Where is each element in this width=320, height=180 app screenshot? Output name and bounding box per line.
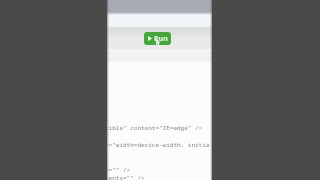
other: Mouse pointer	[155, 39, 161, 47]
staticText: tible" content="IE=edge" />	[107, 124, 203, 132]
staticText: tents="" />	[107, 174, 145, 180]
staticText: Run	[154, 34, 168, 44]
staticText: t="" />	[107, 166, 131, 174]
button[interactable]: Run	[144, 32, 171, 45]
staticText: t="width=device-width, initial-	[107, 141, 210, 149]
button[interactable]: tible" content="IE=edge" />	[107, 0, 212, 180]
